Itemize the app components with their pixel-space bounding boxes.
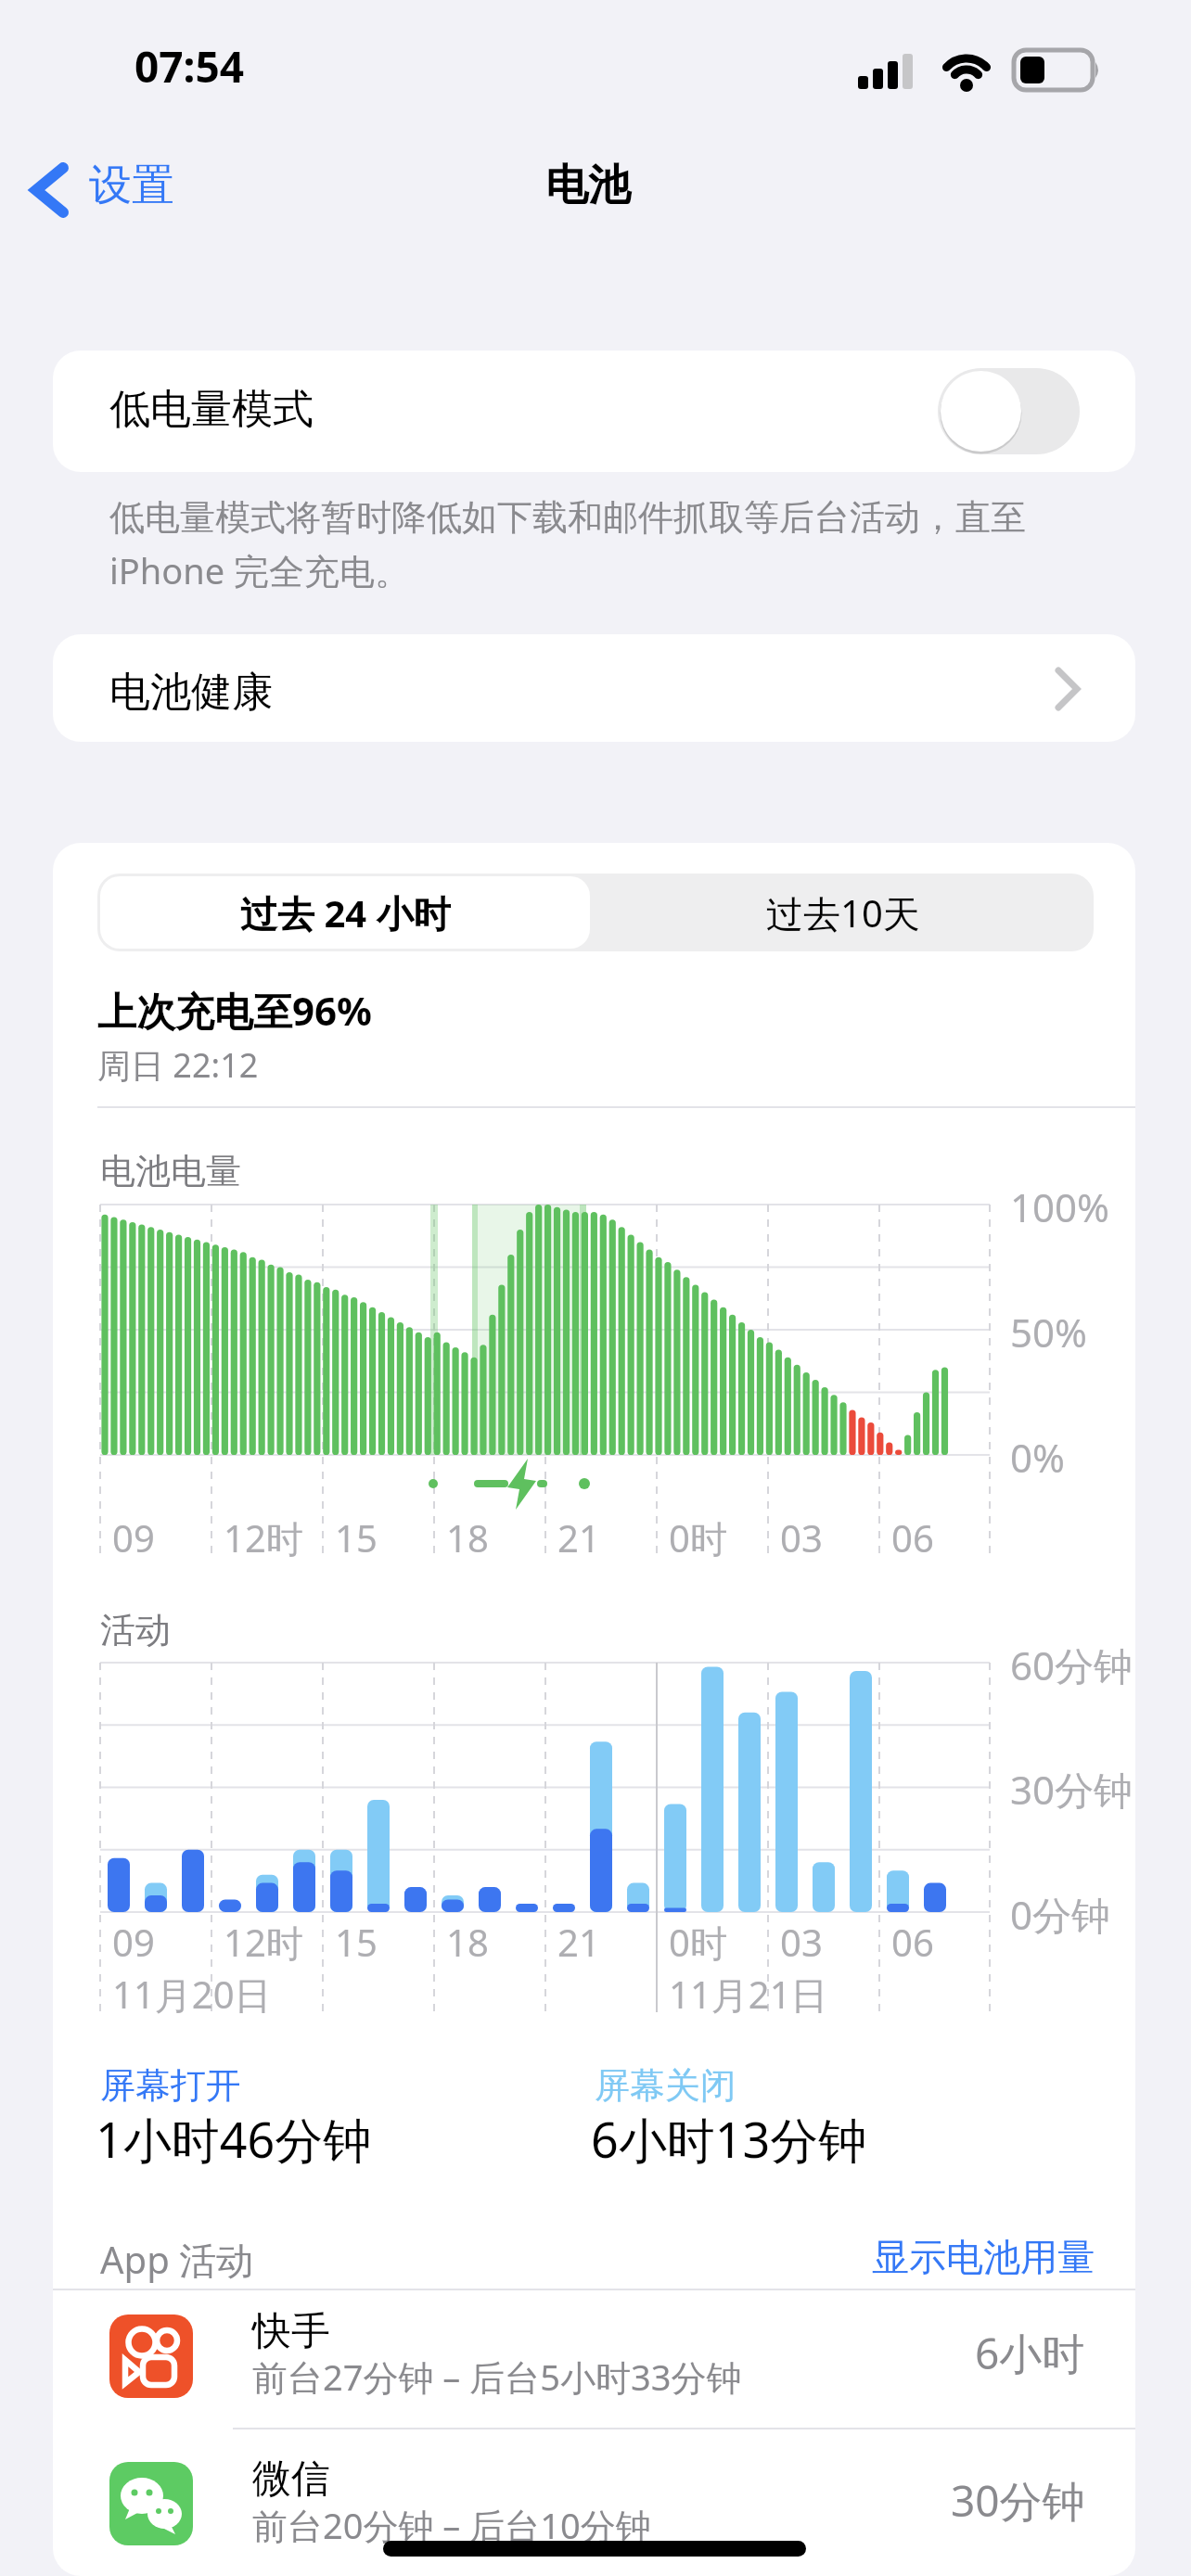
staticText: 09 bbox=[112, 1917, 155, 1967]
staticText: 15 bbox=[335, 1512, 378, 1562]
staticText: 前台20分钟 – 后台10分钟 bbox=[252, 2501, 651, 2549]
staticText: 电池健康 bbox=[109, 667, 273, 718]
staticText: 上次充电至96% bbox=[97, 984, 372, 1037]
staticText: 电池电量 bbox=[100, 1149, 241, 1193]
staticText: 屏幕打开 bbox=[100, 2063, 241, 2108]
staticText: 0时 bbox=[669, 1512, 727, 1563]
staticText: 30分钟 bbox=[1010, 1763, 1133, 1816]
staticText: 活动 bbox=[100, 1608, 171, 1652]
staticText: 30分钟 bbox=[951, 2471, 1085, 2530]
staticText: 电池 bbox=[545, 159, 631, 212]
staticText: 微信 bbox=[252, 2455, 330, 2504]
button[interactable]: 设置 bbox=[28, 153, 260, 227]
staticText: 18 bbox=[446, 1512, 489, 1562]
staticText: 18 bbox=[446, 1917, 489, 1967]
staticText: 低电量模式 bbox=[109, 384, 314, 435]
staticText: 过去 24 小时 bbox=[240, 887, 451, 938]
staticText: 11月21日 bbox=[669, 1969, 828, 2020]
staticText: iPhone 完全充电。 bbox=[109, 546, 411, 594]
staticText: 03 bbox=[780, 1917, 823, 1967]
staticText: 06 bbox=[891, 1512, 934, 1562]
button[interactable]: 快手 bbox=[53, 2290, 1135, 2428]
staticText: 6小时 bbox=[975, 2324, 1085, 2382]
button[interactable]: 微信 bbox=[53, 2429, 1135, 2576]
staticText: 1小时46分钟 bbox=[96, 2106, 372, 2172]
staticText: 21 bbox=[557, 1917, 600, 1967]
staticText: 过去10天 bbox=[766, 887, 920, 938]
button[interactable]: 显示电池用量 bbox=[872, 2234, 1095, 2280]
staticText: 50% bbox=[1010, 1306, 1087, 1358]
staticText: 06 bbox=[891, 1917, 934, 1967]
staticText: 周日 22:12 bbox=[97, 1042, 259, 1088]
staticText: 60分钟 bbox=[1010, 1639, 1133, 1691]
staticText: 快手 bbox=[252, 2307, 330, 2356]
staticText: 12时 bbox=[224, 1512, 303, 1563]
button[interactable]: 过去 24 小时 bbox=[100, 876, 590, 949]
staticText: 09 bbox=[112, 1512, 155, 1562]
staticText: 15 bbox=[335, 1917, 378, 1967]
button[interactable]: 电池健康 bbox=[53, 634, 1135, 742]
staticText: 6小时13分钟 bbox=[591, 2106, 867, 2172]
staticText: 0时 bbox=[669, 1917, 727, 1968]
staticText: 0% bbox=[1010, 1431, 1065, 1484]
staticText: 前台27分钟 – 后台5小时33分钟 bbox=[252, 2353, 742, 2401]
staticText: 0分钟 bbox=[1010, 1888, 1111, 1941]
staticText: 11月20日 bbox=[112, 1969, 272, 2020]
staticText: 低电量模式将暂时降低如下载和邮件抓取等后台活动，直至 bbox=[109, 495, 1026, 540]
staticText: 03 bbox=[780, 1512, 823, 1562]
staticText: 07:54 bbox=[134, 37, 245, 96]
staticText: 100% bbox=[1010, 1180, 1109, 1233]
staticText: 设置 bbox=[89, 159, 174, 212]
staticText: 21 bbox=[557, 1512, 600, 1562]
button[interactable] bbox=[938, 368, 1080, 454]
staticText: 屏幕关闭 bbox=[595, 2063, 736, 2108]
staticText: App 活动 bbox=[100, 2234, 254, 2285]
staticText: 12时 bbox=[224, 1917, 303, 1968]
button[interactable]: 过去10天 bbox=[593, 874, 1094, 951]
